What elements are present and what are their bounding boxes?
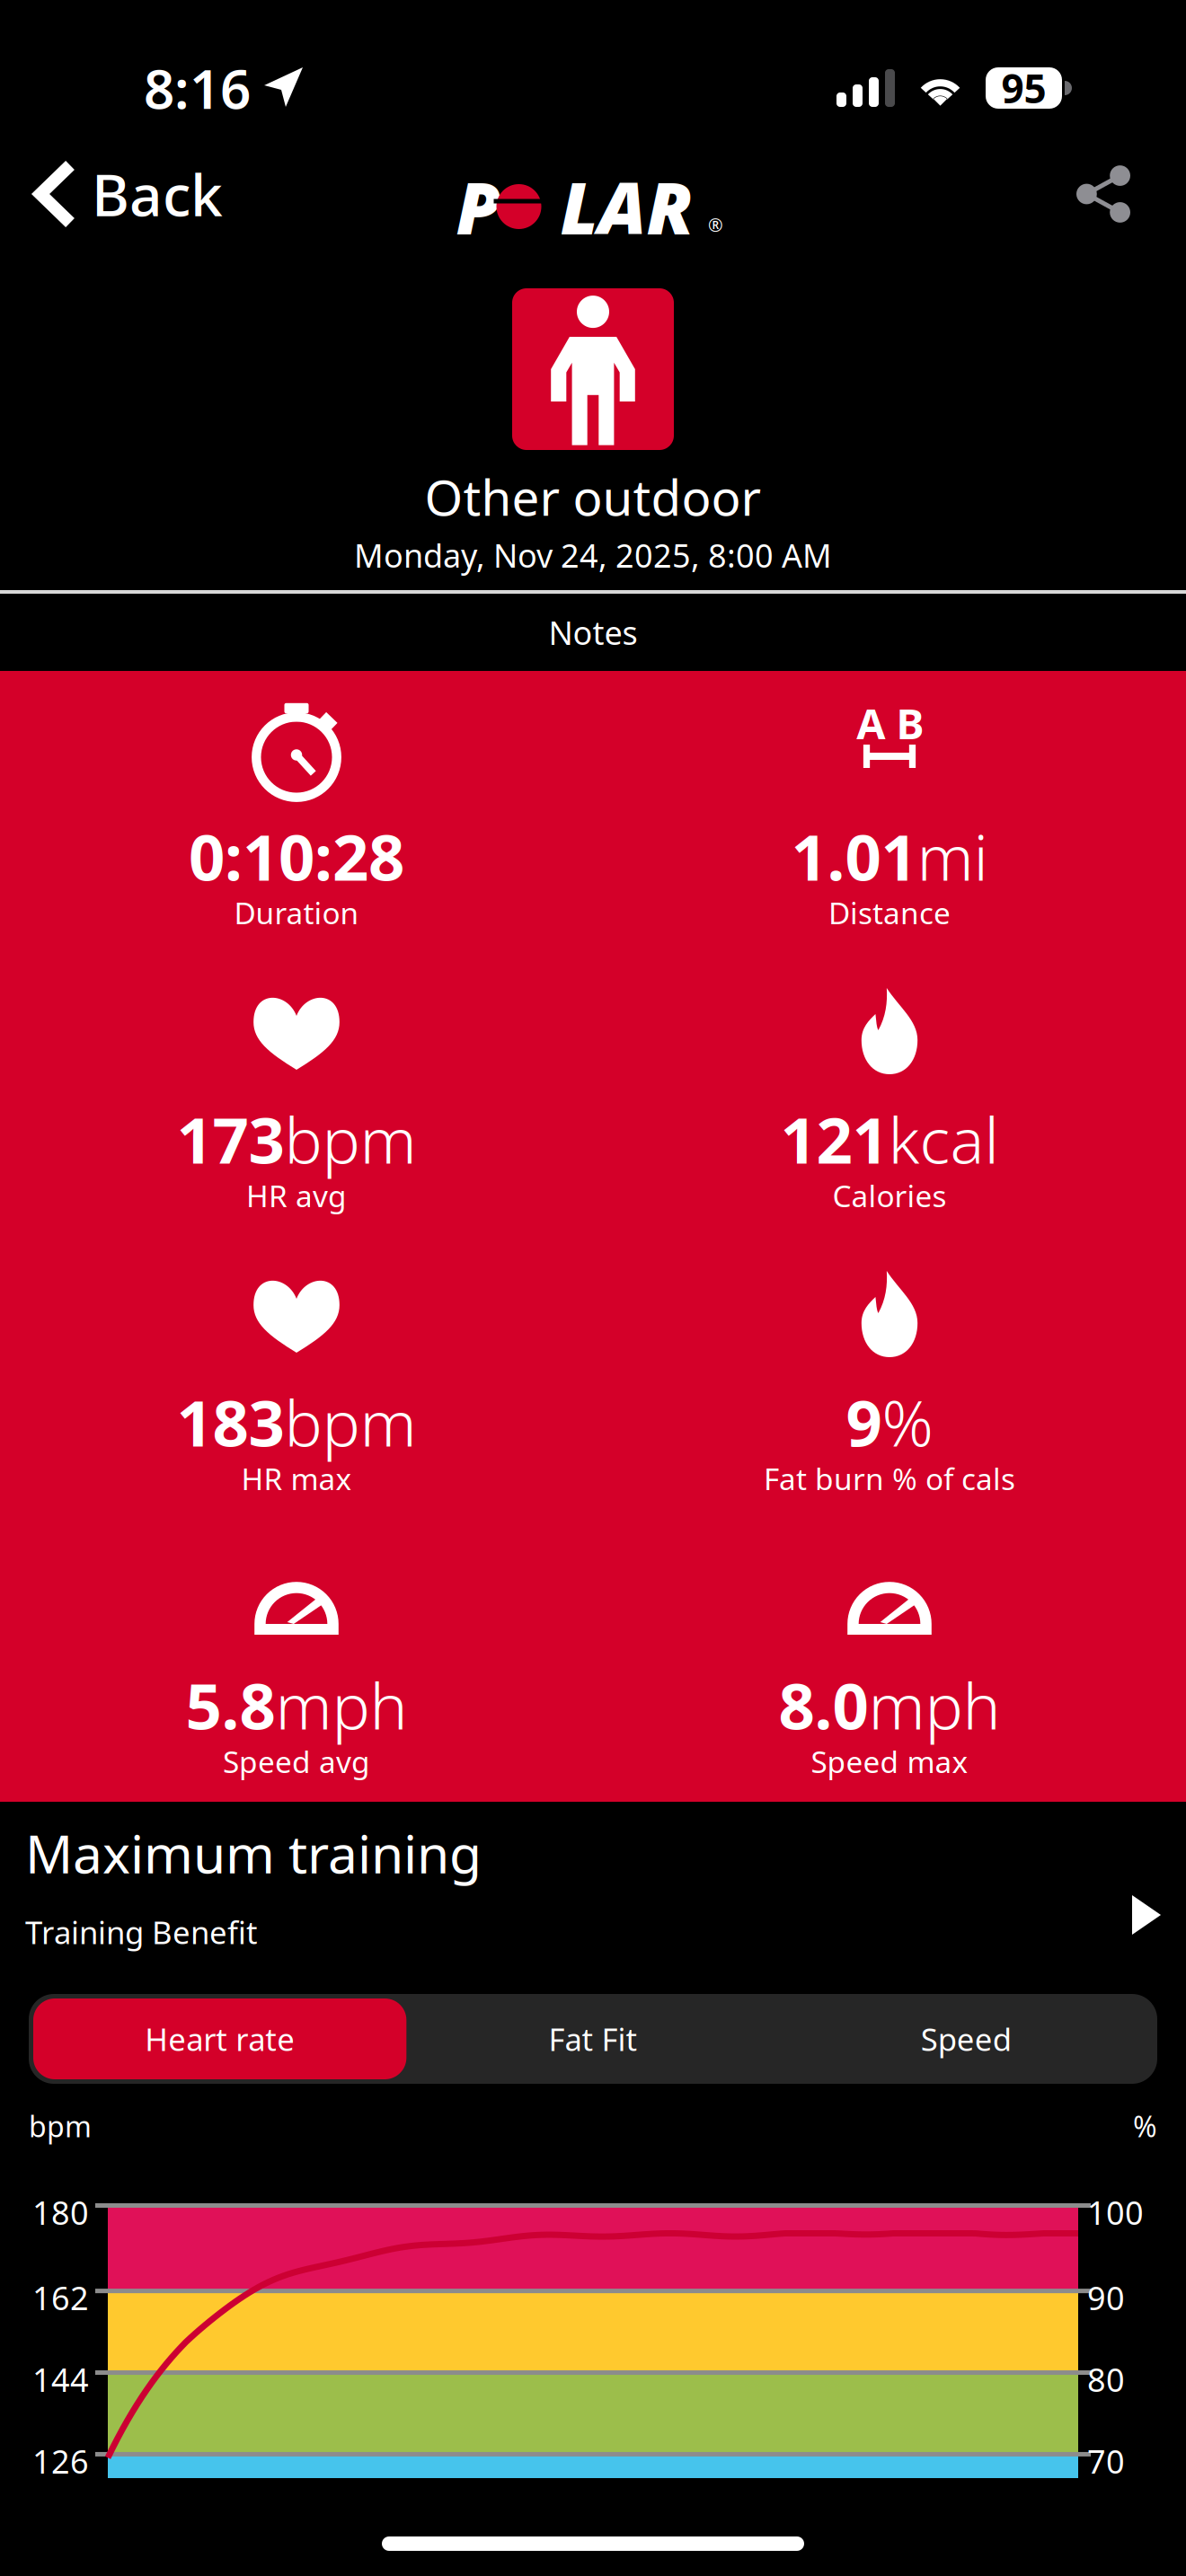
button[interactable]: Heart rate: [33, 1998, 406, 2079]
staticText: Speed max: [811, 1741, 968, 1781]
staticText: Speed avg: [223, 1741, 370, 1781]
staticText: 95: [1001, 62, 1046, 114]
staticText: 162: [32, 2276, 89, 2319]
staticText: 80: [1087, 2358, 1125, 2401]
staticText: 100: [1087, 2191, 1144, 2234]
staticText: Maximum training: [25, 1818, 482, 1888]
staticText: 126: [32, 2439, 89, 2482]
staticText: HR avg: [246, 1176, 347, 1215]
button[interactable]: Maximum training: [0, 1802, 1186, 1981]
staticText: Other outdoor: [425, 464, 761, 529]
staticText: mi: [917, 814, 988, 898]
staticText: Duration: [234, 893, 359, 932]
staticText: ®: [708, 213, 723, 237]
staticText: %: [1133, 2107, 1157, 2145]
button[interactable]: Fat Fit: [406, 1998, 780, 2079]
staticText: Calories: [832, 1176, 947, 1215]
staticText: 70: [1087, 2439, 1125, 2482]
staticText: 5.8: [186, 1663, 275, 1747]
staticText: mph: [868, 1663, 1000, 1747]
staticText: 8:16: [144, 52, 251, 124]
staticText: 9: [846, 1380, 882, 1464]
button[interactable]: Share: [1076, 148, 1186, 240]
button[interactable]: Back: [0, 145, 223, 243]
staticText: Speed: [921, 2018, 1012, 2060]
staticText: 173: [177, 1097, 284, 1181]
staticText: 8.0: [779, 1663, 868, 1747]
staticText: B: [896, 695, 924, 751]
staticText: 121: [780, 1097, 888, 1181]
staticText: Monday, Nov 24, 2025, 8:00 AM: [354, 534, 832, 577]
staticText: Back: [92, 156, 223, 232]
staticText: bpm: [284, 1097, 416, 1181]
staticText: LAR: [560, 159, 693, 254]
staticText: Notes: [549, 611, 637, 654]
staticText: 1.01: [791, 814, 917, 898]
staticText: bpm: [284, 1380, 416, 1464]
staticText: Training Benefit: [25, 1911, 258, 1953]
button[interactable]: Speed: [780, 1998, 1153, 2079]
staticText: 144: [32, 2358, 89, 2401]
staticText: mph: [275, 1663, 407, 1747]
staticText: HR max: [241, 1459, 352, 1498]
staticText: A: [856, 695, 885, 751]
staticText: Distance: [828, 893, 951, 932]
staticText: P: [456, 159, 501, 254]
staticText: Fat Fit: [549, 2018, 637, 2060]
staticText: Heart rate: [145, 2018, 295, 2060]
staticText: 0:10:28: [189, 814, 404, 898]
button[interactable]: Notes: [0, 594, 1186, 671]
staticText: Fat burn % of cals: [764, 1459, 1015, 1498]
staticText: 90: [1087, 2276, 1125, 2319]
staticText: 180: [32, 2191, 89, 2234]
staticText: %: [882, 1380, 933, 1464]
staticText: kcal: [888, 1097, 999, 1181]
staticText: bpm: [29, 2107, 92, 2145]
staticText: 183: [177, 1380, 284, 1464]
